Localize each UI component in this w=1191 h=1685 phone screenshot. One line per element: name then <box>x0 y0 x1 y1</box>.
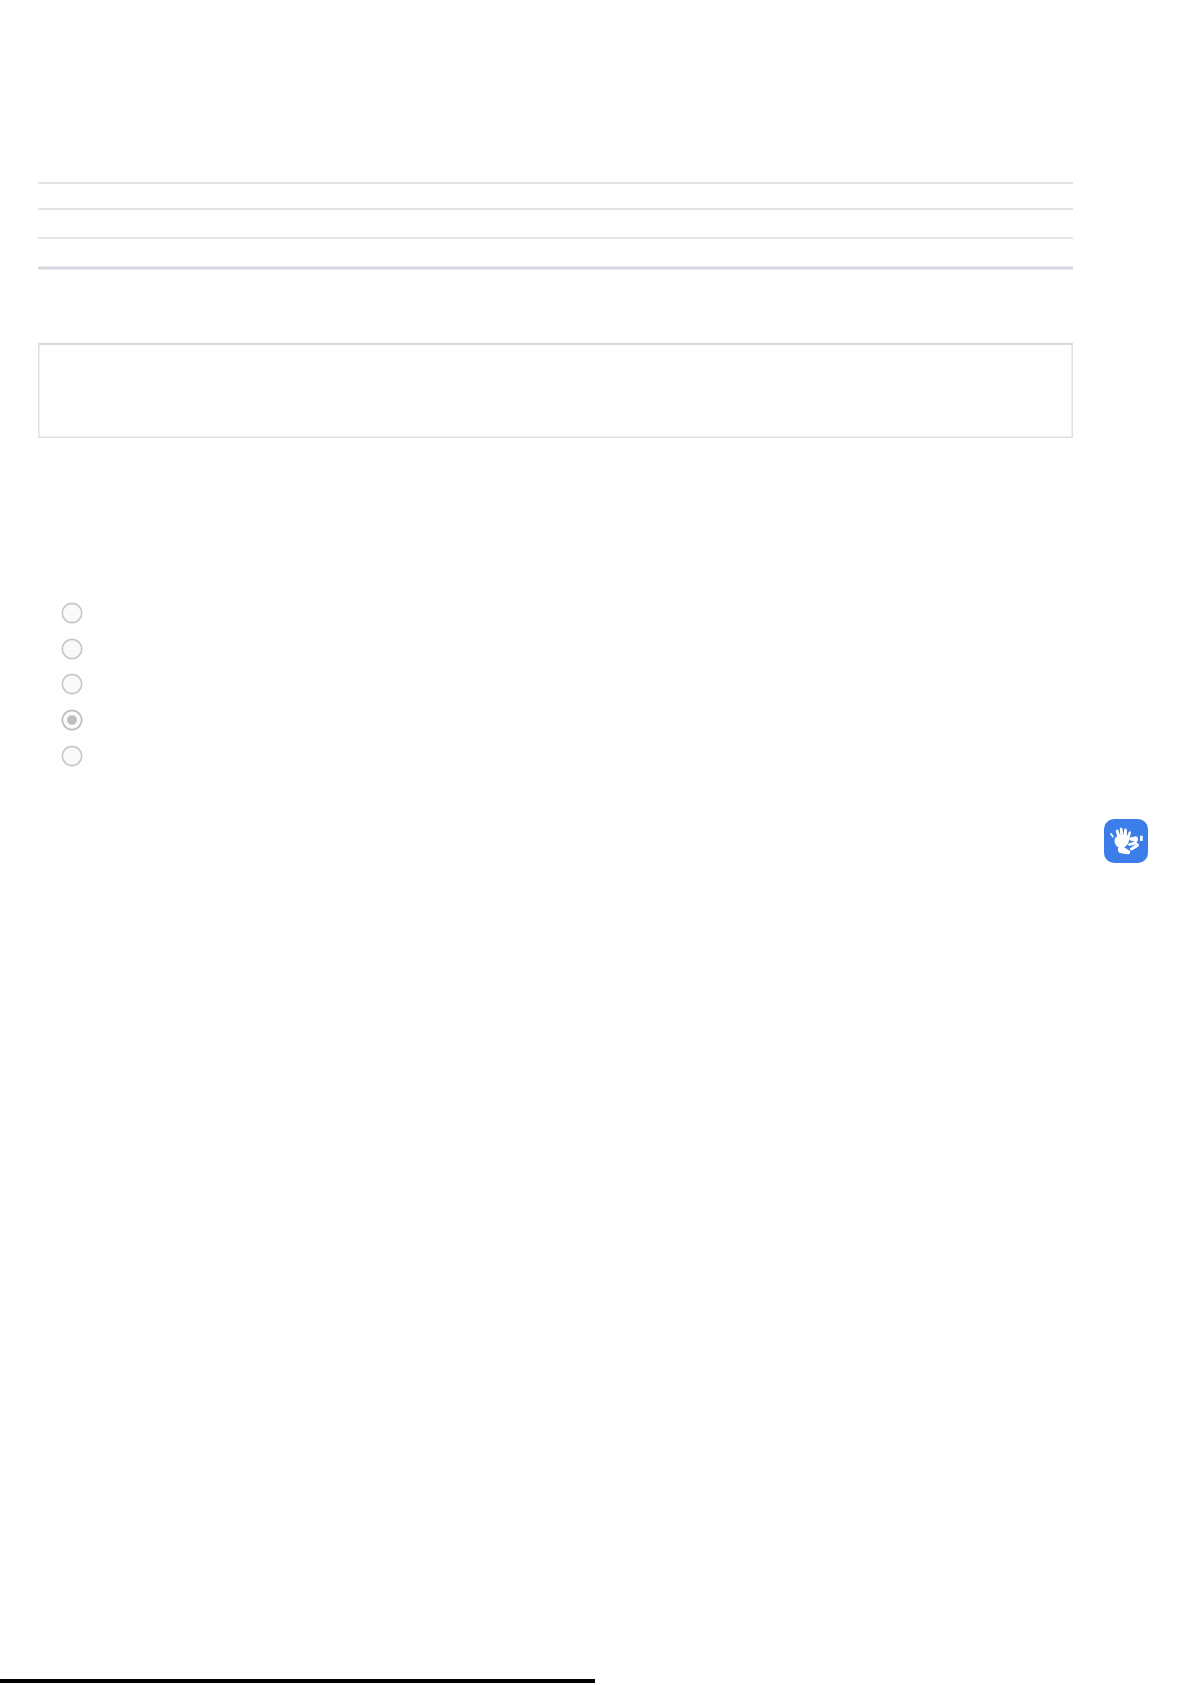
button[interactable]: Sign language interpreter <box>1104 819 1148 863</box>
button[interactable]: Option 2 <box>55 632 89 666</box>
button[interactable]: Option 3 <box>55 667 89 701</box>
button[interactable]: Option 1 <box>55 596 89 630</box>
button[interactable]: Option 4 <box>55 703 89 737</box>
button[interactable]: Option 5 <box>55 739 89 773</box>
